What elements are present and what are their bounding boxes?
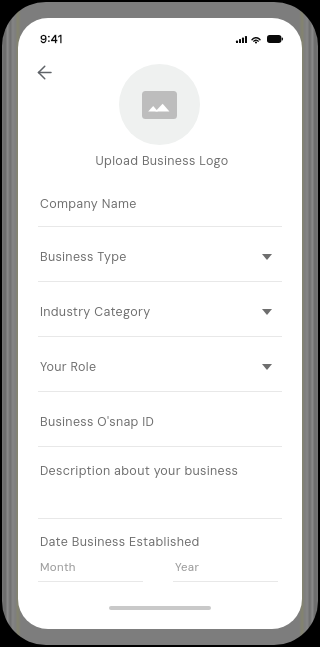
button[interactable]: Year [173,560,278,582]
button[interactable]: Upload business logo [119,64,200,145]
button[interactable]: Description about your business [38,447,282,519]
staticText: Description about your business [40,463,239,479]
button[interactable]: Business Type [38,227,282,282]
staticText: Company Name [40,196,137,212]
button[interactable]: Your Role [38,337,282,392]
staticText: Month [40,560,76,575]
button[interactable]: Month [38,560,143,582]
other: Open Your Role options [262,364,272,370]
button[interactable]: Industry Category [38,282,282,337]
staticText: Your Role [40,359,97,375]
staticText: Upload Business Logo [20,153,302,169]
staticText: 9:41 [40,32,63,46]
other: Open Business Type options [262,254,272,260]
staticText: Year [175,560,200,575]
button[interactable]: Back [22,50,66,94]
staticText: Business O'snap ID [40,414,155,430]
other: Open Industry Category options [262,309,272,315]
staticText: Date Business Established [40,534,200,550]
staticText: Industry Category [40,304,151,320]
staticText: Business Type [40,249,127,265]
button[interactable]: Business O'snap ID [38,392,282,447]
button[interactable]: Company Name [38,181,282,227]
